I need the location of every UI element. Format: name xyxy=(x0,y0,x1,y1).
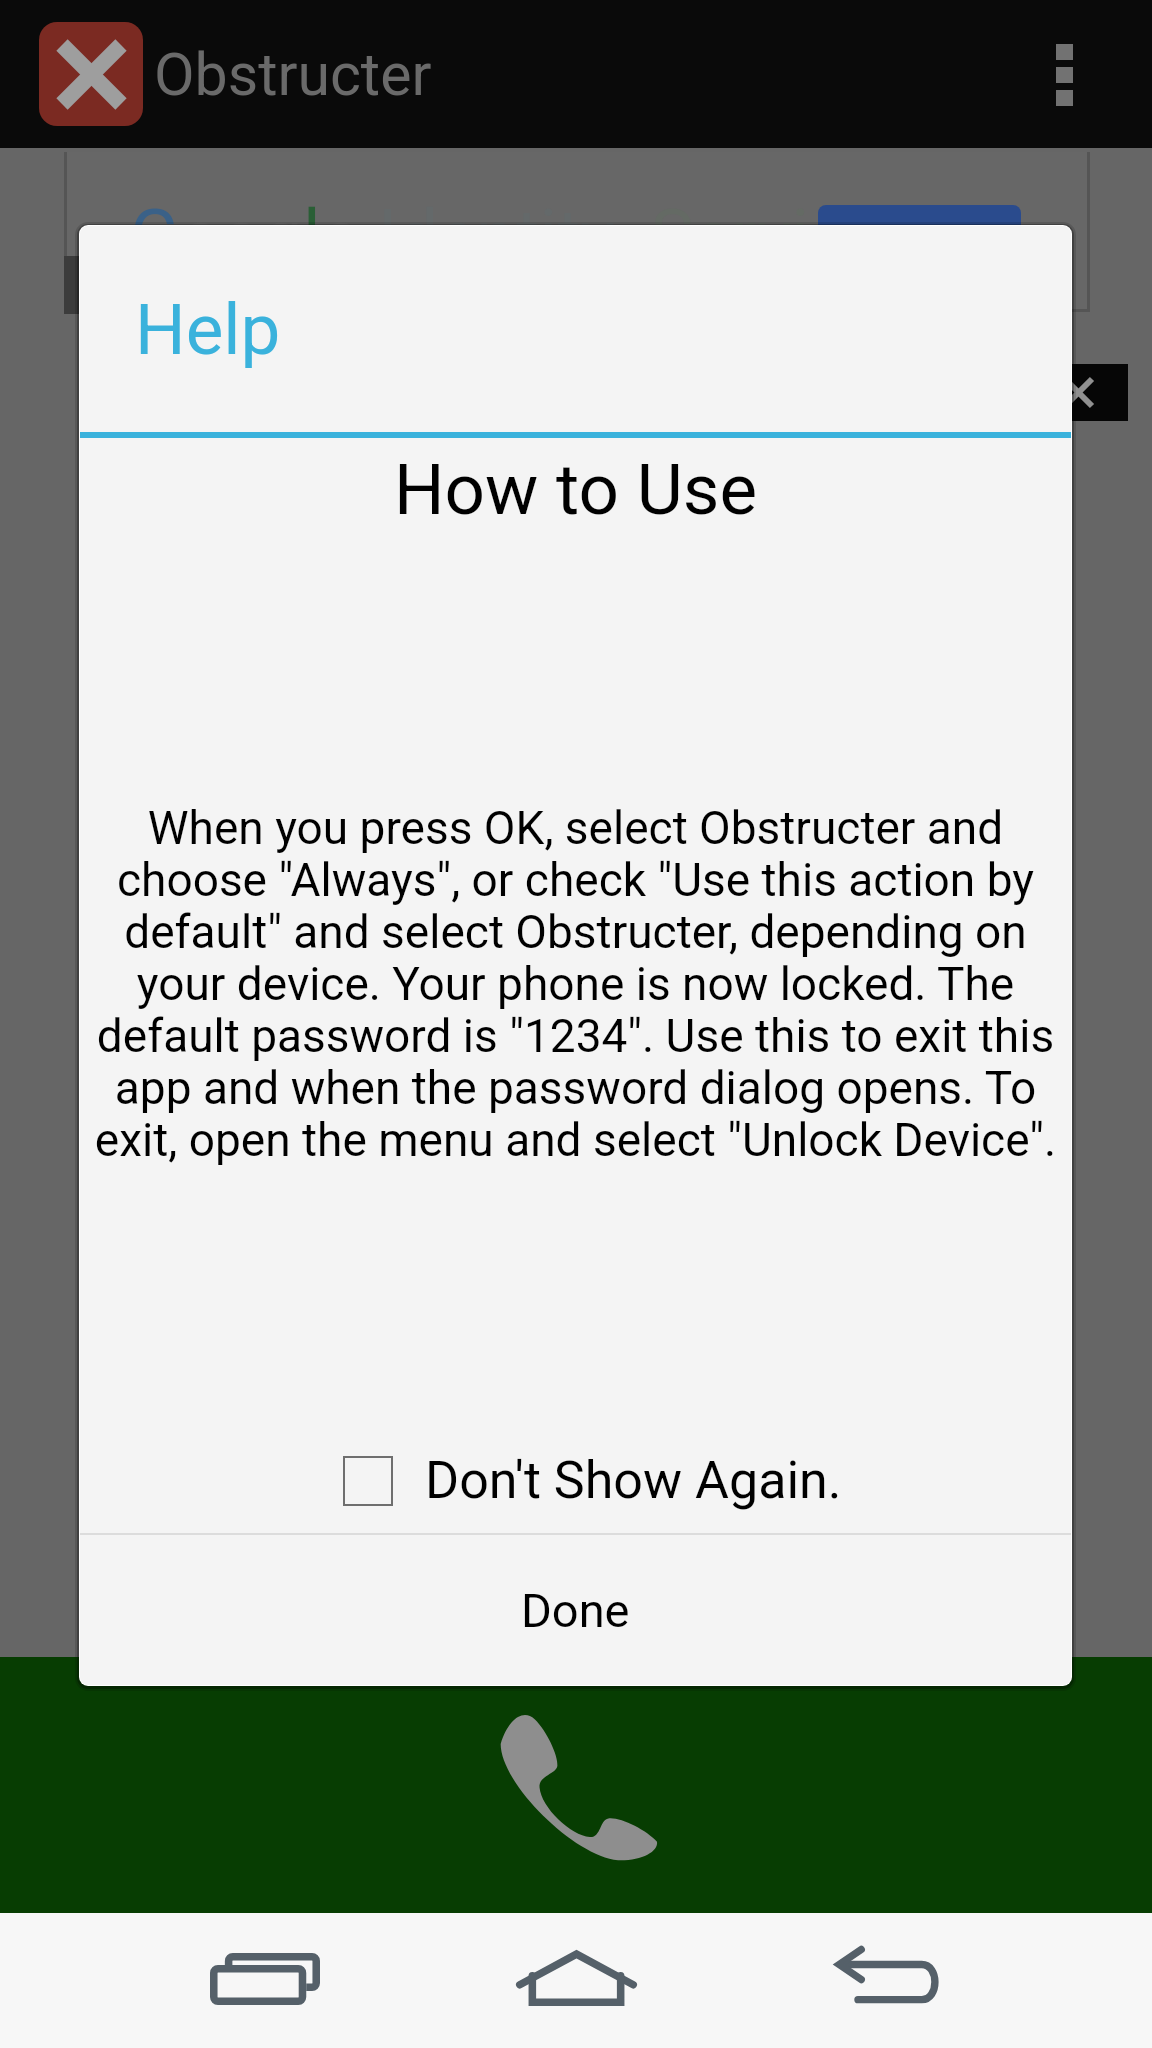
staticText: When you press OK, select Obstructer and… xyxy=(88,801,1063,1167)
button[interactable]: Don't Show Again. xyxy=(343,1450,842,1511)
staticText: oog xyxy=(180,194,303,278)
staticText: e xyxy=(321,194,360,278)
staticText: l xyxy=(303,194,321,278)
staticText: Don't Show Again. xyxy=(425,1450,842,1511)
button[interactable]: Home xyxy=(486,1913,666,2048)
button[interactable]: Back xyxy=(798,1913,978,2048)
staticText: G xyxy=(130,194,180,278)
staticText: How to Use xyxy=(80,448,1071,531)
staticText: Service xyxy=(615,194,885,278)
button[interactable]: Obstructer app icon xyxy=(39,22,143,126)
staticText: Help xyxy=(135,288,281,371)
staticText: Done xyxy=(521,1583,630,1638)
button[interactable]: Close xyxy=(1050,364,1128,421)
button[interactable]: Recents xyxy=(175,1913,355,2048)
button[interactable]: More options xyxy=(1000,0,1118,148)
button[interactable]: Done xyxy=(80,1535,1071,1685)
staticText: Identity xyxy=(360,194,615,278)
staticText: Obstructer xyxy=(154,40,432,109)
